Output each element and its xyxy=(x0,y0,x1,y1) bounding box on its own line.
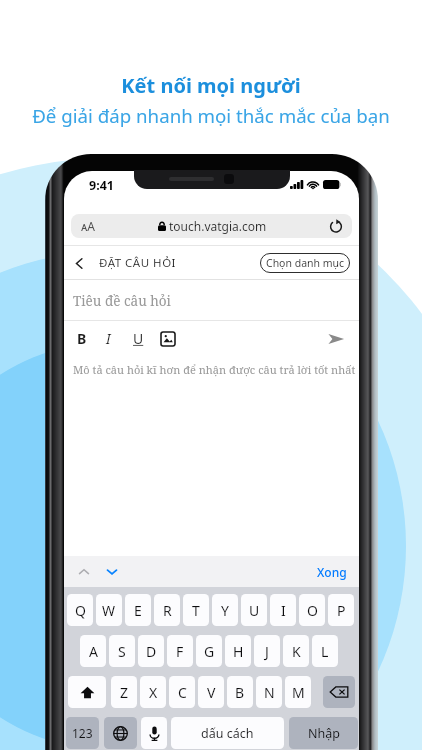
staticText: D xyxy=(146,642,157,661)
staticText: G xyxy=(204,642,215,661)
button[interactable]: T xyxy=(183,594,209,626)
staticText: X xyxy=(149,683,158,702)
button[interactable]: L xyxy=(312,635,338,667)
staticText: S xyxy=(118,642,126,661)
button[interactable]: B xyxy=(227,676,253,708)
staticText: O xyxy=(307,601,318,620)
staticText: touch.vatgia.com xyxy=(169,218,267,234)
button[interactable]: C xyxy=(169,676,195,708)
button[interactable]: G xyxy=(196,635,222,667)
staticText: 9:41 xyxy=(89,177,114,194)
button[interactable]: Insert image xyxy=(161,332,175,346)
button[interactable]: O xyxy=(299,594,325,626)
staticText: P xyxy=(337,601,346,620)
button[interactable]: Y xyxy=(212,594,238,626)
button[interactable]: Q xyxy=(67,594,93,626)
button[interactable]: dấu cách xyxy=(171,717,284,749)
button[interactable]: H xyxy=(225,635,251,667)
staticText: Nhập xyxy=(308,725,340,742)
button[interactable]: P xyxy=(328,594,354,626)
button[interactable]: U xyxy=(241,594,267,626)
button[interactable]: S xyxy=(109,635,135,667)
button[interactable]: K xyxy=(283,635,309,667)
staticText: C xyxy=(178,683,187,702)
button[interactable]: Next field xyxy=(104,564,120,580)
staticText: ĐẶT CÂU HỎI xyxy=(99,255,177,271)
staticText: I xyxy=(106,329,111,348)
button[interactable]: Backspace xyxy=(323,676,355,708)
staticText: M xyxy=(292,683,305,702)
staticText: F xyxy=(176,642,184,661)
button[interactable]: R xyxy=(154,594,180,626)
staticText: dấu cách xyxy=(201,725,254,742)
button[interactable]: Chọn danh mục xyxy=(260,253,350,273)
button[interactable]: A xyxy=(80,635,106,667)
button[interactable]: Reload xyxy=(329,219,343,233)
staticText: Kết nối mọi người xyxy=(0,72,422,99)
staticText: T xyxy=(192,601,200,620)
staticText: L xyxy=(321,642,329,661)
button[interactable]: Back xyxy=(72,256,87,271)
button[interactable]: Z xyxy=(111,676,137,708)
button[interactable]: Xong xyxy=(317,564,347,580)
button[interactable]: ᴀA xyxy=(71,214,352,238)
staticText: K xyxy=(292,642,301,661)
staticText: Mô tả câu hỏi kĩ hơn để nhận được câu tr… xyxy=(73,362,356,377)
staticText: J xyxy=(265,642,269,661)
button[interactable]: J xyxy=(254,635,280,667)
staticText: B xyxy=(77,329,87,348)
button[interactable]: M xyxy=(285,676,311,708)
staticText: 123 xyxy=(72,725,93,741)
staticText: A xyxy=(89,642,98,661)
button[interactable]: 123 xyxy=(66,717,99,749)
button[interactable]: W xyxy=(96,594,122,626)
button[interactable]: I xyxy=(270,594,296,626)
staticText: V xyxy=(207,683,216,702)
staticText: Để giải đáp nhanh mọi thắc mắc của bạn xyxy=(0,103,422,128)
button[interactable]: Change keyboard language xyxy=(104,717,137,749)
staticText: H xyxy=(233,642,244,661)
staticText: U xyxy=(133,329,144,348)
button[interactable]: Send xyxy=(327,330,345,348)
button[interactable]: Previous field xyxy=(76,564,92,580)
staticText: W xyxy=(102,601,116,620)
staticText: Q xyxy=(75,601,86,620)
button[interactable]: V xyxy=(198,676,224,708)
button[interactable]: X xyxy=(140,676,166,708)
staticText: B xyxy=(235,683,245,702)
button[interactable]: Shift xyxy=(68,676,106,708)
staticText: E xyxy=(134,601,142,620)
staticText: I xyxy=(281,601,286,620)
staticText: R xyxy=(163,601,172,620)
button[interactable]: N xyxy=(256,676,282,708)
button[interactable]: F xyxy=(167,635,193,667)
staticText: Z xyxy=(120,683,129,702)
button[interactable]: E xyxy=(125,594,151,626)
button[interactable]: Nhập xyxy=(289,717,358,749)
staticText: Chọn danh mục xyxy=(266,256,345,270)
button[interactable]: D xyxy=(138,635,164,667)
button[interactable]: Voice input xyxy=(141,717,167,749)
staticText: N xyxy=(264,683,275,702)
staticText: U xyxy=(249,601,260,620)
staticText: ᴀA xyxy=(81,218,95,234)
staticText: Y xyxy=(221,601,229,620)
staticText: Tiêu đề câu hỏi xyxy=(73,292,171,310)
